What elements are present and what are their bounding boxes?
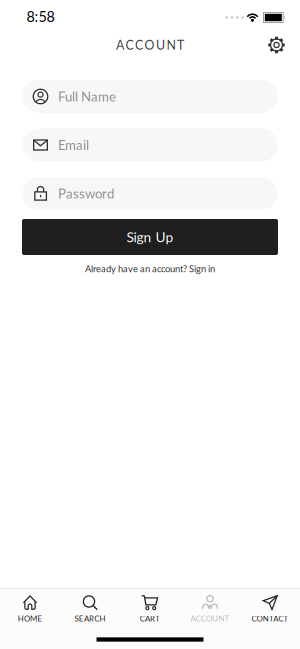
button[interactable]: HOME — [0, 589, 60, 629]
staticText: HOME — [18, 614, 42, 623]
staticText: SEARCH — [74, 614, 105, 623]
button[interactable]: Full Name — [22, 80, 277, 113]
button[interactable]: Password — [22, 177, 277, 210]
button[interactable]: Already have an account? Sign in — [85, 263, 215, 274]
button[interactable]: Sign Up — [22, 219, 278, 255]
staticText: Full Name — [58, 89, 116, 104]
staticText: 8:58 — [26, 8, 54, 25]
staticText: Password — [58, 186, 114, 201]
staticText: CART — [140, 614, 160, 623]
staticText: ACCOUNT — [190, 614, 230, 623]
staticText: Sign Up — [126, 229, 173, 245]
button[interactable]: Email — [22, 128, 277, 161]
button[interactable] — [268, 36, 300, 53]
button[interactable]: CONTACT — [240, 589, 300, 629]
staticText: CONTACT — [251, 614, 289, 623]
staticText: ACCOUNT — [116, 38, 184, 52]
staticText: Already have an account? Sign in — [85, 263, 215, 274]
button[interactable]: CART — [120, 589, 180, 629]
staticText: Email — [58, 137, 89, 153]
button[interactable]: ACCOUNT — [180, 589, 240, 629]
button[interactable]: SEARCH — [60, 589, 120, 629]
